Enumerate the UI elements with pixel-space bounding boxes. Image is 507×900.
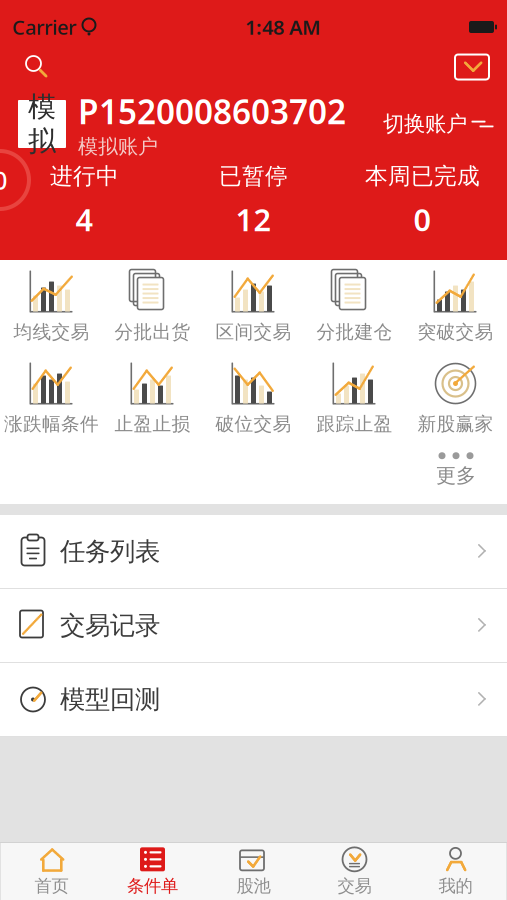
staticText: 切换账户 — [383, 111, 467, 137]
staticText: 1:48 AM — [245, 14, 321, 40]
staticText: 条件单 — [127, 875, 178, 897]
staticText: 0 — [0, 163, 7, 197]
staticText: 交易 — [337, 875, 371, 897]
button[interactable]: 股池 — [203, 843, 304, 900]
button[interactable]: 交易记录 — [0, 589, 507, 663]
button[interactable]: 区间交易 — [203, 263, 304, 349]
button[interactable]: 模型回测 — [0, 663, 507, 737]
staticText: 首页 — [34, 875, 68, 897]
staticText: 0 — [413, 199, 431, 240]
staticText: 突破交易 — [417, 320, 493, 343]
staticText: 止盈止损 — [114, 412, 190, 435]
button[interactable]: 首页 — [1, 843, 102, 900]
staticText: 模拟 — [28, 90, 56, 158]
staticText: 模拟账户 — [78, 134, 158, 159]
staticText: 更多 — [436, 463, 476, 488]
button[interactable]: Search — [14, 44, 60, 90]
button[interactable]: 新股赢家 — [405, 355, 506, 441]
staticText: 破位交易 — [215, 412, 291, 435]
button[interactable]: 条件单 — [102, 843, 203, 900]
staticText: 分批出货 — [114, 320, 190, 343]
button[interactable]: 止盈止损 — [102, 355, 203, 441]
staticText: 股池 — [236, 875, 270, 897]
button[interactable]: 跟踪止盈 — [304, 355, 405, 441]
staticText: 区间交易 — [215, 320, 291, 343]
button[interactable]: 分批出货 — [102, 263, 203, 349]
staticText: Carrier — [12, 14, 76, 40]
staticText: 4 — [75, 199, 93, 240]
button[interactable]: 涨跌幅条件 — [1, 355, 102, 441]
button[interactable]: 切换账户 — [383, 104, 491, 144]
button[interactable]: 破位交易 — [203, 355, 304, 441]
button[interactable]: 更多 — [411, 444, 501, 496]
staticText: 已暂停 — [219, 162, 288, 190]
staticText: 分批建仓 — [316, 320, 392, 343]
staticText: 跟踪止盈 — [316, 412, 392, 435]
staticText: 新股赢家 — [417, 412, 493, 435]
staticText: 本周已完成 — [365, 162, 480, 190]
button[interactable]: 任务列表 — [0, 515, 507, 589]
button[interactable]: Messages — [449, 44, 495, 90]
button[interactable]: 均线交易 — [1, 263, 102, 349]
staticText: P1520008603702 — [78, 89, 346, 133]
button[interactable]: 我的 — [405, 843, 506, 900]
button[interactable]: 分批建仓 — [304, 263, 405, 349]
staticText: 12 — [235, 199, 271, 240]
staticText: 进行中 — [50, 162, 119, 190]
button[interactable]: 突破交易 — [405, 263, 506, 349]
staticText: 任务列表 — [60, 536, 160, 567]
button[interactable]: 交易 — [304, 843, 405, 900]
staticText: 我的 — [438, 875, 472, 897]
staticText: 涨跌幅条件 — [4, 412, 99, 435]
staticText: 模型回测 — [60, 684, 160, 715]
staticText: 交易记录 — [60, 610, 160, 641]
staticText: 均线交易 — [13, 320, 89, 343]
